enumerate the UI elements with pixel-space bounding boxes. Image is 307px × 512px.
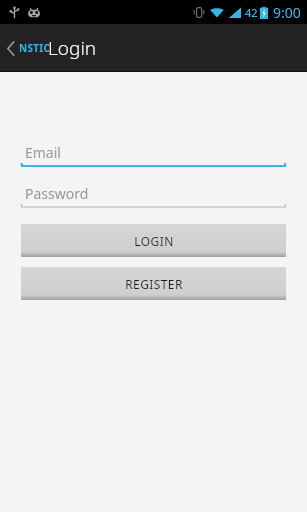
button[interactable]: Password (21, 184, 286, 210)
button[interactable]: Up, NSTIC (0, 24, 55, 72)
staticText: REGISTER (125, 276, 183, 292)
staticText: Login (48, 35, 97, 61)
staticText: 42 (245, 5, 258, 20)
staticText: Email (25, 143, 61, 162)
staticText: LOGIN (134, 233, 174, 249)
button[interactable]: Email (21, 143, 286, 169)
staticText: 9:00 (273, 3, 301, 22)
button[interactable]: REGISTER (21, 267, 286, 300)
button[interactable]: LOGIN (21, 224, 286, 257)
staticText: NSTIC (19, 41, 51, 55)
staticText: Password (25, 184, 89, 203)
